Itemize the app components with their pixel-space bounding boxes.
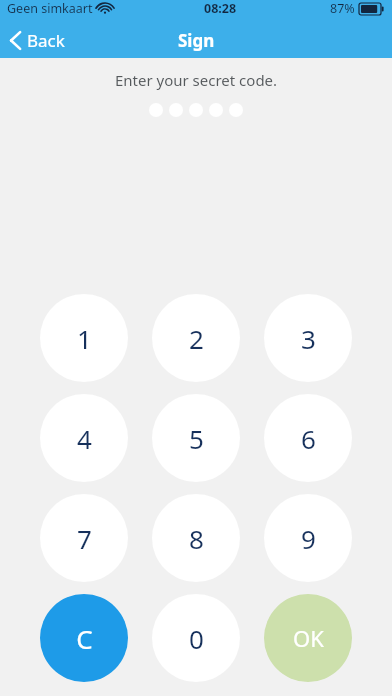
button[interactable]: 6 (264, 394, 352, 482)
button[interactable]: Back (0, 25, 77, 56)
staticText: 6 (301, 421, 316, 456)
staticText: 7 (77, 521, 92, 556)
button[interactable]: 2 (152, 294, 240, 382)
button[interactable]: 8 (152, 494, 240, 582)
staticText: Geen simkaart (7, 0, 93, 17)
staticText: 5 (189, 421, 204, 456)
staticText: Sign (178, 29, 215, 52)
staticText: Enter your secret code. (0, 70, 392, 90)
staticText: 9 (301, 521, 316, 556)
staticText: 87% (330, 0, 355, 17)
staticText: OK (293, 623, 324, 653)
button[interactable]: C (40, 594, 128, 682)
staticText: 8 (189, 521, 204, 556)
button[interactable]: 7 (40, 494, 128, 582)
staticText: Back (27, 29, 65, 52)
staticText: C (76, 621, 93, 656)
button[interactable]: 3 (264, 294, 352, 382)
staticText: 0 (189, 621, 204, 656)
button[interactable]: 5 (152, 394, 240, 482)
button[interactable]: 0 (152, 594, 240, 682)
staticText: 4 (77, 421, 92, 456)
button[interactable]: 4 (40, 394, 128, 482)
button[interactable]: OK (264, 594, 352, 682)
staticText: 1 (77, 321, 92, 356)
staticText: 3 (301, 321, 316, 356)
button[interactable]: 1 (40, 294, 128, 382)
button[interactable]: 9 (264, 494, 352, 582)
staticText: 2 (189, 321, 204, 356)
staticText: 08:28 (204, 0, 237, 17)
